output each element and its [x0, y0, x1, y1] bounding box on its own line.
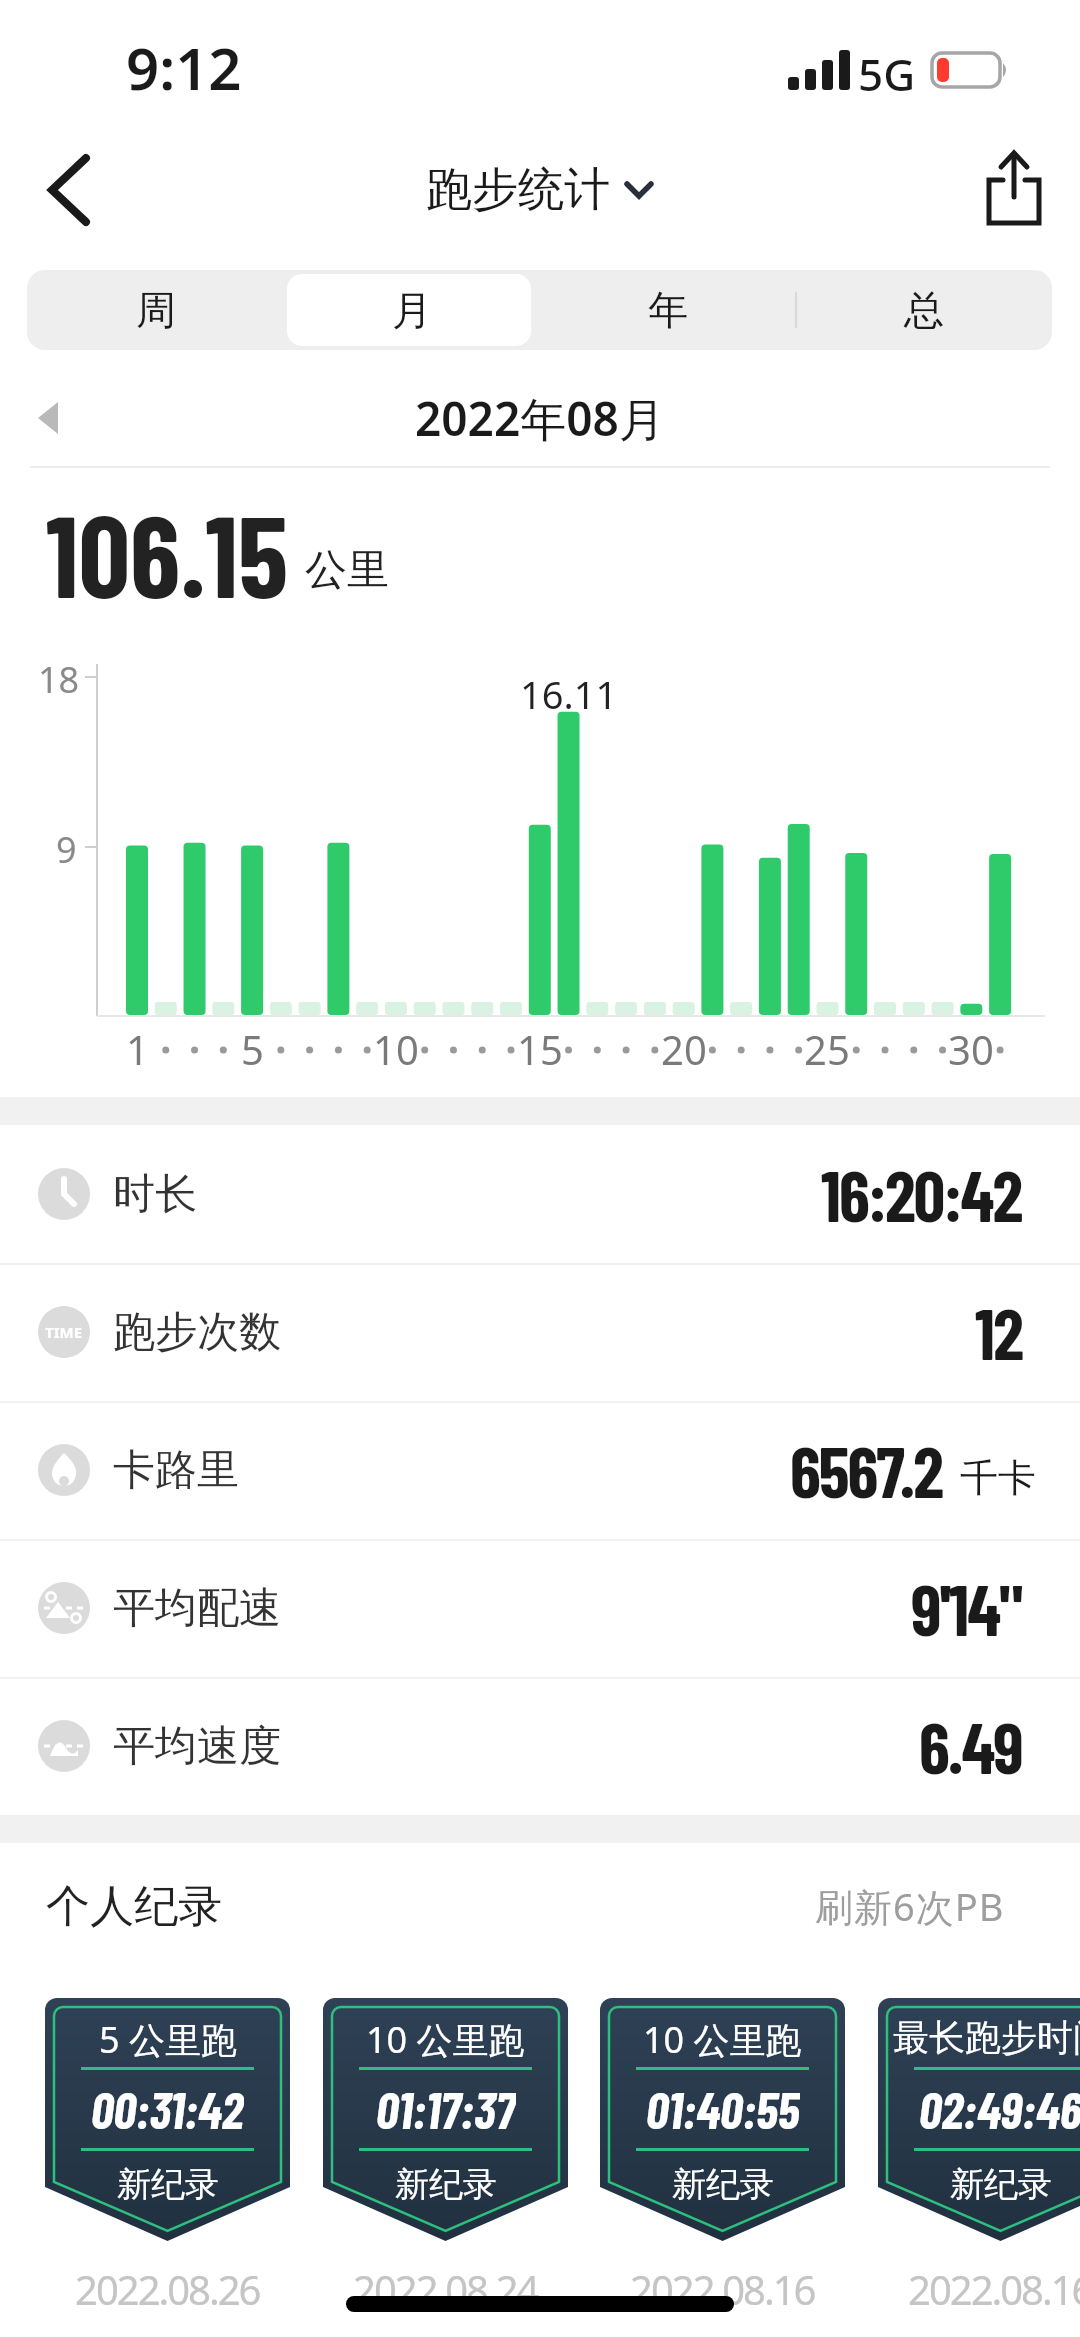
staticText: 1: [126, 1022, 149, 1076]
staticText: 总: [904, 285, 944, 335]
staticText: 16.11: [520, 668, 618, 720]
staticText: 平均配速: [113, 1582, 281, 1635]
staticText: 5G: [858, 44, 916, 104]
staticText: 01:17:37: [376, 2078, 516, 2138]
staticText: 最长跑步时间: [893, 2015, 1080, 2060]
staticText: 2022.08.26: [75, 2262, 260, 2316]
button[interactable]: 最长跑步时间: [878, 1998, 1080, 2241]
staticText: 5: [241, 1022, 264, 1076]
staticText: 12: [975, 1290, 1022, 1374]
staticText: 9: [56, 825, 77, 874]
staticText: 新纪录: [395, 2163, 497, 2206]
staticText: 新纪录: [950, 2163, 1052, 2206]
staticText: TIME: [45, 1322, 83, 1342]
staticText: 10 公里跑: [643, 2015, 802, 2064]
staticText: 10: [373, 1022, 419, 1076]
button[interactable]: [975, 145, 1055, 235]
button[interactable]: TIME: [0, 1263, 1080, 1401]
staticText: 30: [948, 1022, 994, 1076]
staticText: 年: [648, 285, 688, 335]
button[interactable]: 月: [283, 270, 540, 350]
staticText: 刷新6次PB: [815, 1880, 1005, 1932]
staticText: 16:20:42: [821, 1152, 1022, 1236]
staticText: 02:49:46: [919, 2078, 1080, 2138]
staticText: 公里: [305, 544, 389, 597]
button[interactable]: 5 公里跑: [45, 1998, 290, 2241]
button[interactable]: 卡路里: [0, 1401, 1080, 1539]
staticText: 新纪录: [672, 2163, 774, 2206]
staticText: 9:12: [126, 28, 242, 107]
button[interactable]: [30, 150, 110, 230]
button[interactable]: 10 公里跑: [600, 1998, 845, 2241]
staticText: 2022.08.16: [630, 2262, 815, 2316]
staticText: 2022.08.24: [353, 2262, 538, 2316]
staticText: 千卡: [960, 1454, 1036, 1502]
staticText: 时长: [113, 1168, 197, 1221]
staticText: 2022年08月: [415, 387, 665, 450]
staticText: 106.15: [46, 484, 289, 621]
staticText: 月: [392, 285, 432, 335]
button[interactable]: 2022年08月: [0, 385, 1080, 451]
button[interactable]: 平均配速: [0, 1539, 1080, 1677]
staticText: 10 公里跑: [366, 2015, 525, 2064]
staticText: 9'14": [911, 1566, 1022, 1650]
staticText: 00:31:42: [91, 2078, 244, 2138]
staticText: 01:40:55: [646, 2078, 800, 2138]
staticText: 25: [804, 1022, 850, 1076]
staticText: 卡路里: [113, 1444, 239, 1497]
button[interactable]: 平均速度: [0, 1677, 1080, 1815]
button[interactable]: 时长: [0, 1125, 1080, 1263]
staticText: 平均速度: [113, 1720, 281, 1773]
staticText: 6.49: [919, 1704, 1022, 1788]
staticText: 2022.08.16: [908, 2262, 1080, 2316]
button[interactable]: 总: [795, 270, 1052, 350]
staticText: 周: [136, 285, 176, 335]
staticText: 6567.2: [790, 1428, 942, 1512]
staticText: 跑步统计: [426, 161, 610, 219]
staticText: 15: [517, 1022, 563, 1076]
staticText: 20: [661, 1022, 707, 1076]
staticText: 个人纪录: [46, 1879, 222, 1934]
staticText: 18: [38, 655, 80, 704]
button[interactable]: 跑步统计: [426, 161, 654, 219]
staticText: 跑步次数: [113, 1306, 281, 1359]
button[interactable]: 年: [539, 270, 796, 350]
staticText: 新纪录: [117, 2163, 219, 2206]
button[interactable]: 10 公里跑: [323, 1998, 568, 2241]
staticText: 5 公里跑: [99, 2015, 237, 2064]
button[interactable]: 周: [27, 270, 284, 350]
